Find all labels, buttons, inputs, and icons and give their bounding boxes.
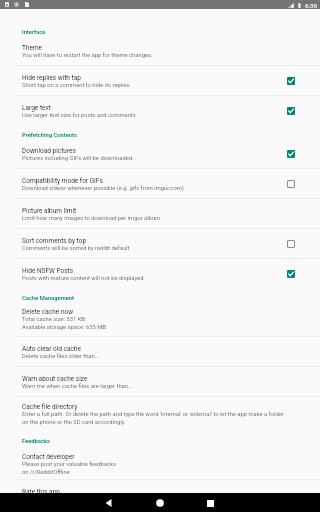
button[interactable]: Sort comments by top bbox=[0, 229, 320, 258]
staticText: Theme bbox=[22, 44, 43, 52]
staticText: Cache file directory bbox=[22, 403, 78, 411]
button[interactable]: Home bbox=[134, 494, 185, 512]
button[interactable]: Recent apps bbox=[185, 494, 236, 512]
staticText: Delete cache now bbox=[22, 308, 74, 316]
staticText: Enter a full path. Or delete the path an… bbox=[22, 411, 284, 426]
staticText: Use larger text size for posts and comme… bbox=[22, 112, 138, 119]
staticText: Rate this app bbox=[22, 488, 60, 496]
staticText: Short tap on a comment to hide its repli… bbox=[22, 82, 132, 89]
staticText: Large text bbox=[22, 104, 51, 112]
staticText: Warn me when cache files are larger than… bbox=[22, 383, 133, 390]
staticText: Sort comments by top bbox=[22, 237, 87, 245]
staticText: Download videos whenever possible (e.g. … bbox=[22, 185, 186, 192]
button[interactable]: Hide replies with tap bbox=[0, 66, 320, 95]
staticText: Prefetching Contents bbox=[22, 132, 77, 139]
staticText: Delete cache files older than... bbox=[22, 353, 100, 360]
staticText: Picture album limit bbox=[22, 207, 77, 215]
button[interactable]: Cache file directory bbox=[0, 397, 320, 431]
button[interactable]: Contact developer bbox=[0, 445, 320, 479]
staticText: Limit how many images to download per im… bbox=[22, 215, 162, 222]
button[interactable]: Warn about cache size bbox=[0, 367, 320, 396]
staticText: Total cache size: 531 KB. Available stor… bbox=[22, 316, 108, 331]
button[interactable]: Picture album limit bbox=[0, 199, 320, 228]
button[interactable]: Theme bbox=[0, 36, 320, 65]
staticText: Pictures including GIFs will be download… bbox=[22, 155, 134, 162]
staticText: Warn about cache size bbox=[22, 375, 88, 383]
staticText: Cache Management bbox=[22, 295, 74, 302]
staticText: 6:39 bbox=[305, 2, 317, 9]
staticText: Comments will be sorted by reddit defaul… bbox=[22, 245, 130, 252]
staticText: Compatibility mode for GIFs bbox=[22, 177, 103, 185]
button[interactable]: Rate this app bbox=[0, 480, 320, 493]
staticText: Feedbacks bbox=[22, 438, 51, 445]
staticText: Download pictures bbox=[22, 147, 76, 155]
button[interactable]: Large text bbox=[0, 96, 320, 125]
button[interactable]: Back bbox=[83, 494, 134, 512]
staticText: Contact developer bbox=[22, 453, 75, 461]
staticText: You will have to restart the app for the… bbox=[22, 52, 153, 59]
staticText: Interface bbox=[22, 29, 46, 36]
button[interactable]: Compatibility mode for GIFs bbox=[0, 169, 320, 198]
staticText: Hide replies with tap bbox=[22, 74, 81, 82]
staticText: Posts with mature content will not be di… bbox=[22, 275, 145, 282]
staticText: Hide NSFW Posts bbox=[22, 267, 74, 275]
button[interactable]: Auto clear old cache bbox=[0, 337, 320, 366]
button[interactable]: Delete cache now bbox=[0, 302, 320, 336]
staticText: Please post your valuable feedbacks on /… bbox=[22, 461, 116, 476]
button[interactable]: Hide NSFW Posts bbox=[0, 259, 320, 288]
button[interactable]: Download pictures bbox=[0, 139, 320, 168]
staticText: Auto clear old cache bbox=[22, 345, 81, 353]
